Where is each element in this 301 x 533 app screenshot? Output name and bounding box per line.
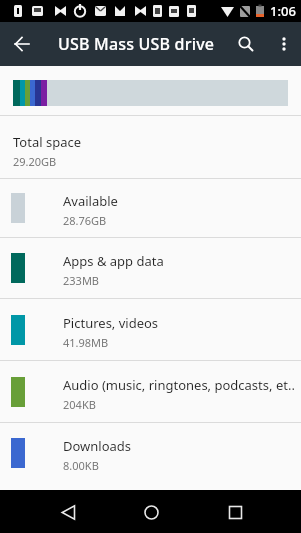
staticText: Available	[63, 192, 118, 210]
staticText: 8.00KB	[63, 458, 99, 473]
button[interactable]	[0, 22, 44, 66]
button[interactable]	[267, 22, 301, 66]
button[interactable]: Available	[0, 179, 301, 237]
button[interactable]: Pictures, videos	[0, 299, 301, 360]
button[interactable]	[47, 491, 89, 533]
button[interactable]: Audio (music, ringtones, podcasts, et..	[0, 361, 301, 422]
staticText: Total space	[13, 133, 81, 151]
staticText: Downloads	[63, 437, 132, 455]
button[interactable]: Downloads	[0, 423, 301, 483]
button[interactable]	[225, 22, 267, 66]
staticText: 204KB	[63, 397, 96, 412]
staticText: 1:06	[270, 2, 296, 20]
staticText: 29.20GB	[13, 154, 57, 169]
button[interactable]	[130, 491, 172, 533]
staticText: 233MB	[63, 273, 100, 288]
button[interactable]: Total space	[0, 116, 301, 178]
staticText: 41.98MB	[63, 335, 109, 350]
staticText: USB Mass USB drive	[58, 33, 215, 55]
staticText: Pictures, videos	[63, 314, 159, 332]
staticText: Apps & app data	[63, 252, 164, 270]
staticText: Audio (music, ringtones, podcasts, et..	[63, 376, 295, 394]
button[interactable]: Apps & app data	[0, 238, 301, 298]
button[interactable]	[214, 491, 256, 533]
staticText: 28.76GB	[63, 213, 107, 228]
